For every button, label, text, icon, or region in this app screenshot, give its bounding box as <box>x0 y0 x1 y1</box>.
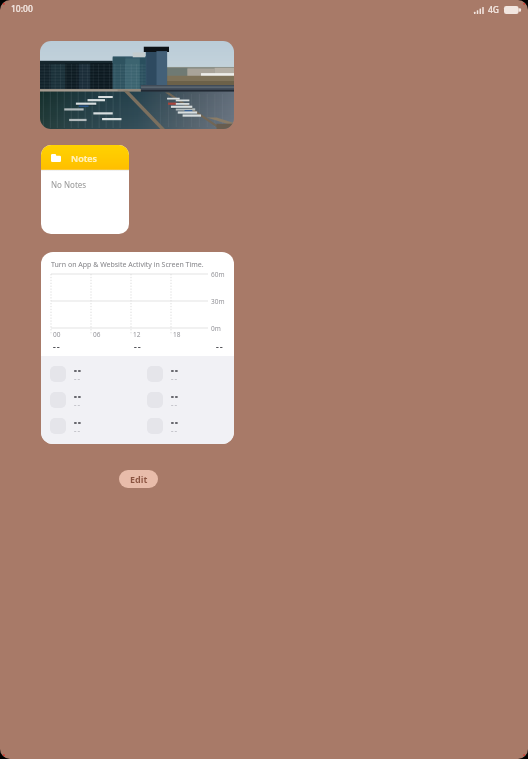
button[interactable]: Notes <box>41 145 129 234</box>
staticText: Edit <box>130 473 148 485</box>
button[interactable]: Turn on App & Website Activity in Screen… <box>41 252 234 444</box>
staticText: 06 <box>93 330 101 339</box>
staticText: 10:00 <box>11 3 33 15</box>
staticText: Notes <box>71 152 98 164</box>
staticText: No Notes <box>51 179 87 190</box>
staticText: 30m <box>211 297 225 306</box>
staticText: 0m <box>211 324 221 333</box>
staticText: 12 <box>133 330 141 339</box>
staticText: 60m <box>211 270 225 279</box>
staticText: 4G <box>488 4 500 16</box>
staticText: 00 <box>53 330 61 339</box>
button[interactable]: Edit <box>119 470 158 488</box>
staticText: Turn on App & Website Activity in Screen… <box>51 260 204 270</box>
staticText: 18 <box>173 330 181 339</box>
button[interactable]: Photo widget <box>40 41 234 129</box>
